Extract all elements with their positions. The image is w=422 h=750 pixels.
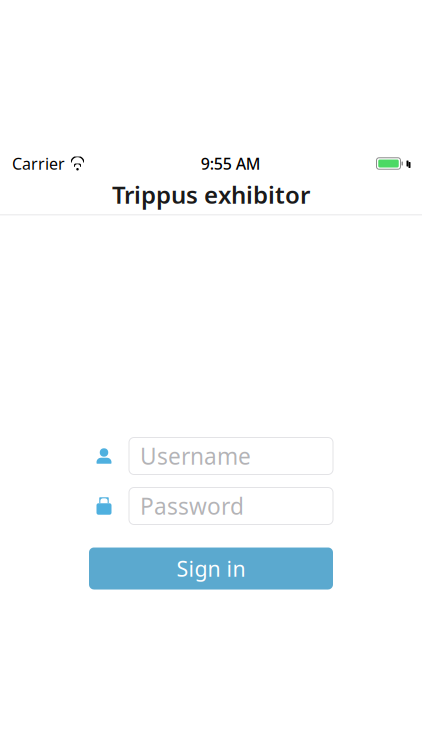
staticText: Password [140, 491, 244, 521]
button[interactable]: Username [129, 437, 333, 474]
staticText: Username [140, 441, 251, 471]
staticText: Trippus exhibitor [112, 179, 310, 210]
staticText: 9:55 AM [201, 153, 261, 174]
staticText: Carrier [12, 153, 65, 174]
button[interactable]: Password [129, 487, 333, 524]
button[interactable]: Sign in [89, 547, 333, 589]
staticText: Sign in [176, 554, 245, 583]
